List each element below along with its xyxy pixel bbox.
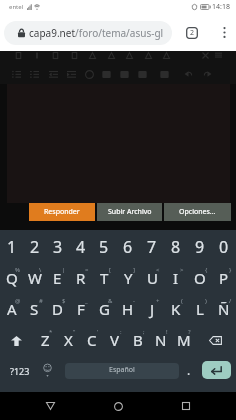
button[interactable]: H	[116, 294, 140, 325]
button[interactable]: Z	[33, 325, 57, 356]
button[interactable]: G	[92, 294, 116, 325]
button[interactable]: Home	[100, 392, 136, 420]
button[interactable]: Highlight	[157, 51, 176, 59]
button[interactable]: Numbered list	[25, 69, 44, 79]
button[interactable]: Ñ	[212, 294, 236, 325]
button[interactable]: Link	[133, 69, 152, 79]
button[interactable]: Responder	[29, 203, 95, 221]
button[interactable]: 5	[92, 232, 116, 263]
button[interactable]: Tabs	[172, 14, 212, 51]
button[interactable]: C	[80, 325, 103, 356]
staticText: _	[85, 297, 88, 305]
staticText: Opciones...	[179, 207, 216, 217]
button[interactable]: K	[164, 294, 188, 325]
button[interactable]: Q	[0, 263, 23, 294]
staticText: 1	[7, 236, 17, 258]
button[interactable]: 8	[164, 232, 188, 263]
button[interactable]: 7	[140, 232, 164, 263]
button[interactable]: Subir Archivo	[97, 203, 162, 221]
button[interactable]: U	[140, 263, 164, 294]
button[interactable]: Español	[65, 363, 179, 379]
button[interactable]: Text size	[83, 51, 102, 59]
button[interactable]: N	[149, 325, 172, 356]
button[interactable]: W	[23, 263, 46, 294]
button[interactable]: Shift	[0, 325, 33, 356]
staticText: @	[15, 297, 21, 305]
staticText: Responder	[44, 207, 80, 217]
staticText: [	[109, 266, 111, 274]
button[interactable]: A	[0, 294, 23, 325]
button[interactable]: B	[126, 325, 149, 356]
button[interactable]: More	[212, 51, 225, 59]
button[interactable]: Superscript	[120, 51, 139, 59]
button[interactable]: Period	[180, 356, 200, 387]
staticText: /	[229, 297, 232, 305]
button[interactable]: Enter	[202, 361, 231, 379]
staticText: =	[85, 266, 89, 274]
staticText: N	[155, 330, 167, 350]
button[interactable]: Opciones...	[164, 203, 231, 221]
staticText: Y	[124, 268, 133, 288]
button[interactable]: 0	[212, 232, 236, 263]
button[interactable]: 4	[69, 232, 92, 263]
button[interactable]: Strikethrough	[65, 51, 83, 59]
button[interactable]: Image	[98, 69, 115, 79]
button[interactable]: S	[23, 294, 46, 325]
button[interactable]: Italic	[28, 51, 46, 59]
button[interactable]: I	[164, 263, 188, 294]
button[interactable]: Recents	[168, 392, 204, 420]
button[interactable]: Indent	[62, 69, 80, 79]
button[interactable]: Text colour	[102, 51, 120, 59]
staticText: $	[62, 297, 66, 305]
button[interactable]: V	[103, 325, 126, 356]
button[interactable]: Underline	[46, 51, 65, 59]
button[interactable]: M	[172, 325, 195, 356]
button[interactable]: X	[57, 325, 80, 356]
staticText: 2	[190, 28, 195, 38]
staticText: G	[99, 299, 110, 319]
button[interactable]: F	[69, 294, 92, 325]
button[interactable]: Video	[155, 69, 173, 79]
staticText: H	[122, 299, 134, 319]
button[interactable]: R	[69, 263, 92, 294]
button[interactable]: Emoji	[37, 356, 58, 387]
button[interactable]: ?123	[0, 356, 37, 387]
button[interactable]: D	[46, 294, 69, 325]
staticText: capa9.net	[29, 26, 75, 40]
button[interactable]: Subscript	[139, 51, 157, 59]
button[interactable]: Clear format	[198, 51, 212, 59]
button[interactable]: Outdent	[44, 69, 62, 79]
staticText: Q	[6, 268, 18, 288]
button[interactable]: More options	[212, 14, 236, 51]
button[interactable]: J	[140, 294, 164, 325]
button[interactable]: T	[92, 263, 116, 294]
button[interactable]: 6	[116, 232, 140, 263]
button[interactable]: Y	[116, 263, 140, 294]
staticText: 4	[76, 236, 86, 258]
staticText: 3	[53, 236, 63, 258]
button[interactable]: P	[212, 263, 236, 294]
staticText: Z	[41, 330, 50, 350]
button[interactable]: E	[46, 263, 69, 294]
staticText: X	[64, 330, 73, 350]
button[interactable]: 1	[0, 232, 23, 263]
staticText: 5	[99, 236, 109, 258]
staticText: :	[120, 328, 122, 336]
button[interactable]: Undo	[179, 69, 198, 79]
button[interactable]: Backspace	[195, 325, 236, 356]
button[interactable]: Emoji	[80, 69, 98, 79]
button[interactable]: O	[188, 263, 212, 294]
button[interactable]: Bullet list	[7, 69, 25, 79]
button[interactable]: L	[188, 294, 212, 325]
button[interactable]: 2	[23, 232, 46, 263]
staticText: 14:18	[212, 2, 230, 12]
button[interactable]: capa9.net	[4, 21, 172, 45]
staticText: *	[49, 328, 53, 336]
button[interactable]: 3	[46, 232, 69, 263]
button[interactable]: Bold	[9, 51, 28, 59]
button[interactable]: Back	[32, 392, 68, 420]
button[interactable]: 9	[188, 232, 212, 263]
staticText: >	[180, 266, 184, 274]
button[interactable]: Redo	[198, 69, 216, 79]
button[interactable]: Attach	[115, 69, 133, 79]
